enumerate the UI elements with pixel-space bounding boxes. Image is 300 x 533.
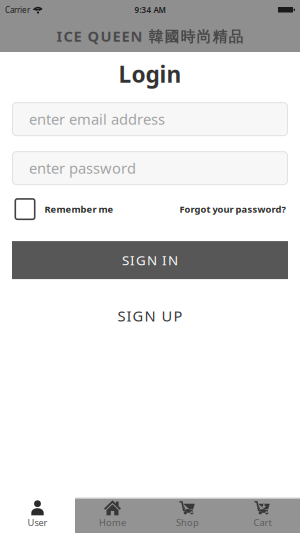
staticText: enter email address <box>29 109 165 129</box>
staticText: S I G N U P <box>117 306 182 326</box>
button[interactable]: S I G N I N <box>12 241 288 279</box>
staticText: Cart <box>253 516 271 529</box>
staticText: Login <box>118 59 181 89</box>
staticText: User <box>27 516 47 529</box>
staticText: 9:34 AM <box>134 5 165 15</box>
staticText: Forgot your password? <box>179 203 285 215</box>
staticText: Home <box>99 516 126 529</box>
button[interactable]: Forgot your password? <box>179 203 285 215</box>
button[interactable]: S I G N U P <box>117 306 182 326</box>
button[interactable]: Home <box>75 499 150 533</box>
staticText: Shop <box>176 516 199 529</box>
button[interactable]: Cart <box>225 499 300 533</box>
button[interactable]: enter email address <box>12 102 288 136</box>
staticText: S I G N I N <box>122 251 178 269</box>
staticText: enter password <box>29 158 136 178</box>
button[interactable]: enter password <box>12 151 288 185</box>
button[interactable]: Shop <box>150 499 225 533</box>
staticText: Carrier <box>5 5 30 15</box>
staticText: I C E Q U E E N 韓 國 時 尚 精 品 <box>56 26 243 46</box>
button[interactable]: User <box>0 499 75 533</box>
staticText: Remember me <box>44 203 113 215</box>
button[interactable]: Remember me <box>14 198 113 220</box>
